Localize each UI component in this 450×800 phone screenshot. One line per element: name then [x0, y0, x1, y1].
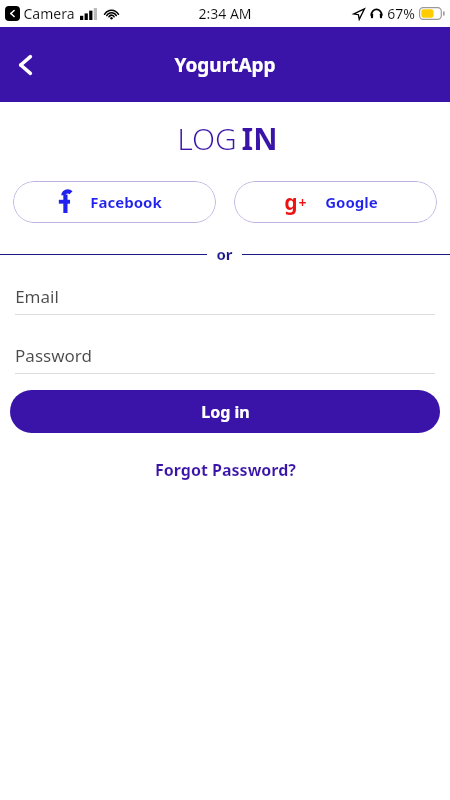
button[interactable]: Log in: [10, 390, 440, 433]
staticText: Password: [15, 344, 92, 367]
staticText: Facebook: [90, 192, 162, 212]
button[interactable]: g: [234, 181, 437, 223]
staticText: or: [216, 244, 233, 264]
staticText: YogurtApp: [174, 52, 276, 78]
staticText: LOG: [173, 118, 241, 159]
staticText: 2:34 AM: [198, 4, 252, 23]
button[interactable]: Forgot Password?: [143, 455, 308, 485]
staticText: 67%: [387, 4, 415, 23]
button[interactable]: Password: [15, 337, 435, 374]
button[interactable]: Back: [4, 43, 48, 87]
staticText: Google: [325, 192, 378, 212]
staticText: Camera: [23, 4, 75, 23]
staticText: Log in: [201, 401, 250, 423]
button[interactable]: Email: [15, 278, 435, 315]
staticText: Email: [15, 285, 59, 308]
staticText: +: [298, 193, 307, 212]
staticText: Forgot Password?: [155, 459, 296, 481]
staticText: g: [284, 188, 298, 217]
button[interactable]: Facebook: [13, 181, 216, 223]
staticText: IN: [241, 118, 278, 159]
